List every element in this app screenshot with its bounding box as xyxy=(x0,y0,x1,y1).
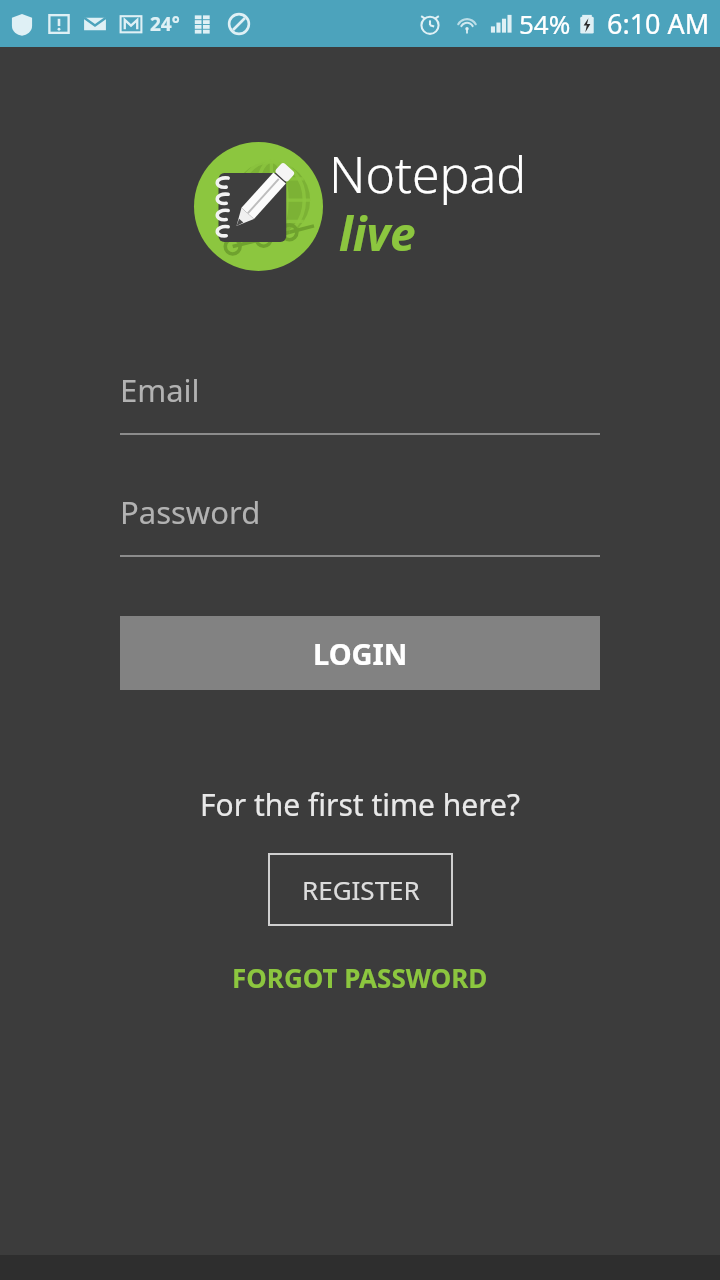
staticText: FORGOT PASSWORD xyxy=(232,960,488,995)
staticText: REGISTER xyxy=(302,872,420,907)
staticText: For the first time here? xyxy=(0,784,720,825)
button[interactable]: Password xyxy=(120,491,600,557)
staticText: 24° xyxy=(150,11,180,37)
staticText: 54% xyxy=(519,6,571,41)
staticText: Notepad xyxy=(329,140,527,208)
staticText: LOGIN xyxy=(313,634,408,673)
button[interactable]: REGISTER xyxy=(268,853,453,926)
button[interactable]: FORGOT PASSWORD xyxy=(216,954,504,1001)
staticText: live xyxy=(339,202,416,265)
button[interactable]: Email xyxy=(120,369,600,435)
staticText: Email xyxy=(120,369,200,411)
staticText: Password xyxy=(120,491,261,533)
button[interactable]: LOGIN xyxy=(120,616,600,690)
staticText: 6:10 AM xyxy=(607,5,710,42)
